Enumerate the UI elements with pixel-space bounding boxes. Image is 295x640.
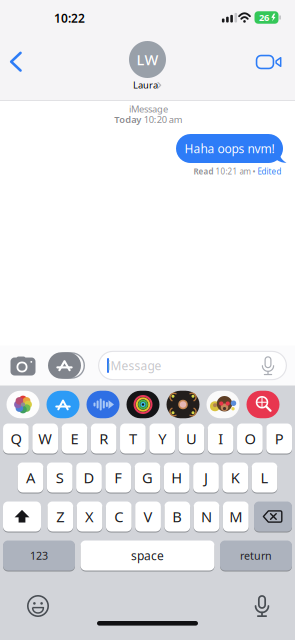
staticText: B <box>172 507 182 526</box>
button[interactable]: L <box>252 462 277 493</box>
staticText: Today <box>114 113 141 126</box>
button[interactable]: G <box>135 462 160 493</box>
button[interactable]: M <box>223 501 249 532</box>
button[interactable]: D <box>76 462 102 493</box>
button[interactable]: Music <box>86 391 119 418</box>
staticText: A <box>26 468 35 487</box>
button[interactable]: Digital Touch <box>126 391 159 418</box>
button[interactable]: App Store <box>46 391 79 418</box>
staticText: C <box>114 507 123 526</box>
staticText: F <box>114 468 122 487</box>
staticText: W <box>38 429 52 448</box>
button[interactable]: B <box>164 501 190 532</box>
staticText: J <box>204 468 208 487</box>
staticText: V <box>144 507 153 526</box>
button[interactable]: Laura, conversation details <box>123 40 171 92</box>
staticText: Z <box>56 507 64 526</box>
button[interactable]: iMessage apps <box>48 352 88 379</box>
staticText: M <box>229 507 242 526</box>
button[interactable]: R <box>91 423 117 454</box>
button[interactable]: V <box>135 501 161 532</box>
button[interactable]: iMessage text field <box>98 351 287 380</box>
button[interactable]: T <box>120 423 146 454</box>
button[interactable]: S <box>47 462 73 493</box>
button[interactable]: N <box>194 501 219 532</box>
button[interactable]: U <box>178 423 204 454</box>
button[interactable]: FaceTime video <box>255 54 282 69</box>
button[interactable]: O <box>237 423 263 454</box>
staticText: Read <box>193 166 213 177</box>
staticText: space <box>131 547 164 563</box>
staticText: 10:21 am <box>215 166 250 177</box>
staticText: P <box>275 429 284 448</box>
staticText: R <box>99 429 108 448</box>
button[interactable]: Camera <box>10 355 35 375</box>
button[interactable]: return <box>220 540 292 571</box>
button[interactable]: Photos <box>6 391 39 418</box>
staticText: O <box>244 429 255 448</box>
button[interactable]: Delete <box>254 501 292 532</box>
button[interactable]: J <box>193 462 219 493</box>
button[interactable]: K <box>222 462 248 493</box>
button[interactable]: I <box>208 423 234 454</box>
staticText: D <box>83 468 94 487</box>
staticText: Haha oops nvm! <box>184 140 274 156</box>
button[interactable]: Stickers <box>166 391 199 418</box>
staticText: Y <box>158 429 166 448</box>
staticText: iMessage <box>129 103 168 115</box>
staticText: LW <box>136 50 158 69</box>
staticText: 10:20 am <box>144 113 183 126</box>
button[interactable]: space <box>80 540 214 571</box>
staticText: X <box>85 507 94 526</box>
staticText: return <box>240 548 272 563</box>
staticText: T <box>129 429 137 448</box>
button[interactable]: Back <box>9 51 23 72</box>
staticText: 26 <box>259 11 269 24</box>
button[interactable]: C <box>106 501 132 532</box>
button[interactable]: P <box>266 423 292 454</box>
staticText: I <box>218 429 223 448</box>
button[interactable]: Emoji <box>27 595 49 617</box>
button[interactable]: Q <box>3 423 29 454</box>
staticText: U <box>186 429 197 448</box>
staticText: Laura <box>133 79 158 91</box>
staticText: H <box>171 468 182 487</box>
staticText: G <box>142 468 153 487</box>
staticText: 10:22 <box>54 10 85 26</box>
button[interactable]: Y <box>149 423 175 454</box>
button[interactable]: X <box>77 501 102 532</box>
staticText: iMessage <box>107 357 161 373</box>
button[interactable]: 123 <box>3 540 75 571</box>
button[interactable]: F <box>105 462 131 493</box>
button[interactable]: W <box>32 423 58 454</box>
button[interactable]: H <box>164 462 190 493</box>
staticText: L <box>260 468 268 487</box>
staticText: S <box>56 468 64 487</box>
staticText: E <box>70 429 78 448</box>
button[interactable]: Memoji Stickers <box>206 391 239 418</box>
staticText: 123 <box>30 548 48 563</box>
staticText: K <box>231 468 240 487</box>
staticText: Q <box>10 429 21 448</box>
button[interactable]: Shift <box>3 501 41 532</box>
button[interactable]: A <box>18 462 43 493</box>
staticText: • <box>252 166 255 177</box>
staticText: Edited <box>257 166 281 177</box>
button[interactable]: Z <box>47 501 73 532</box>
button[interactable]: E <box>61 423 87 454</box>
staticText: N <box>201 507 212 526</box>
button[interactable]: Dictation <box>254 594 270 617</box>
button[interactable]: Search images <box>246 391 279 418</box>
